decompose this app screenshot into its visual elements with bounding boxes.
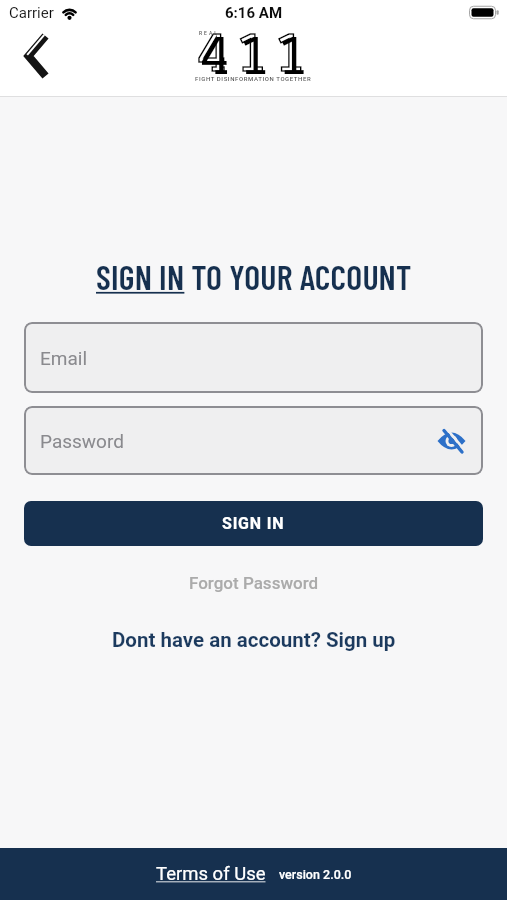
staticText: Carrier bbox=[9, 4, 54, 22]
staticText: 411 bbox=[197, 24, 313, 80]
button[interactable]: Password bbox=[24, 406, 483, 475]
staticText: FIGHT DISINFORMATION TOGETHER bbox=[195, 75, 312, 82]
staticText: Password bbox=[40, 430, 124, 452]
staticText: SIGN IN TO YOUR ACCOUNT bbox=[96, 256, 412, 297]
button[interactable] bbox=[437, 429, 466, 453]
staticText: version 2.0.0 bbox=[279, 867, 352, 882]
staticText: Email bbox=[40, 347, 88, 369]
button[interactable]: Dont have an account? Sign up bbox=[112, 628, 396, 652]
staticText: 411 bbox=[197, 24, 313, 80]
button[interactable]: Terms of Use bbox=[156, 863, 266, 885]
button[interactable] bbox=[24, 32, 50, 80]
button[interactable]: Email bbox=[24, 322, 483, 393]
staticText: 6:16 AM bbox=[225, 4, 283, 22]
staticText: REAL bbox=[199, 30, 219, 36]
button[interactable]: SIGN IN bbox=[24, 501, 483, 546]
button[interactable]: Forgot Password bbox=[189, 573, 319, 593]
staticText: 411 bbox=[200, 27, 316, 83]
staticText: SIGN IN bbox=[222, 514, 285, 533]
